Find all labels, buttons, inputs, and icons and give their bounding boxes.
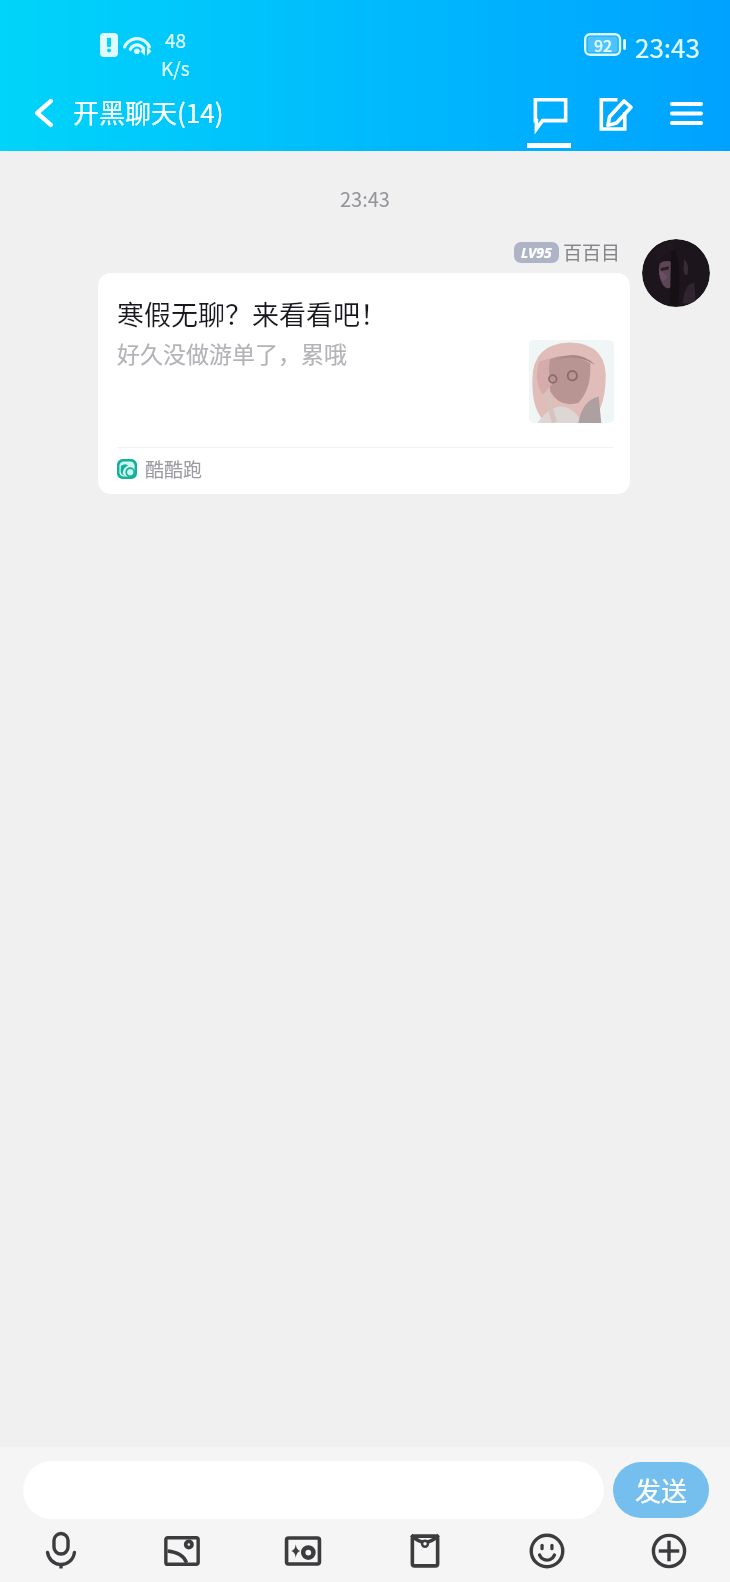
staticText: 发送 (635, 1471, 688, 1509)
button[interactable]: Emoji (486, 1519, 608, 1582)
button[interactable]: Voice message (0, 1519, 121, 1582)
button[interactable]: Avatar (642, 239, 710, 307)
button[interactable]: Menu (653, 80, 721, 151)
button[interactable]: 发送 (613, 1462, 709, 1518)
staticText: 23:43 (635, 28, 700, 66)
staticText: 好久没做游单了，累哦 (117, 336, 347, 369)
staticText: K/s (161, 54, 190, 82)
staticText: 寒假无聊？来看看吧！ (117, 294, 387, 333)
staticText: 23:43 (340, 184, 390, 213)
button[interactable]: More (608, 1519, 730, 1582)
staticText: 48 (165, 26, 187, 54)
staticText: 开黑聊天(14) (73, 93, 224, 131)
button[interactable]: Compose (581, 80, 649, 151)
button[interactable]: Gift (364, 1519, 486, 1582)
button[interactable]: 寒假无聊？来看看吧！ (98, 273, 630, 494)
button[interactable]: Back (0, 80, 72, 151)
staticText: 92 (594, 33, 613, 56)
button[interactable]: Photo (121, 1519, 242, 1582)
staticText: LV95 (521, 243, 552, 262)
button[interactable]: Chat (514, 80, 584, 151)
button[interactable]: Sticker (242, 1519, 364, 1582)
staticText: 酷酷跑 (145, 455, 203, 483)
staticText: 百百目 (563, 238, 621, 266)
